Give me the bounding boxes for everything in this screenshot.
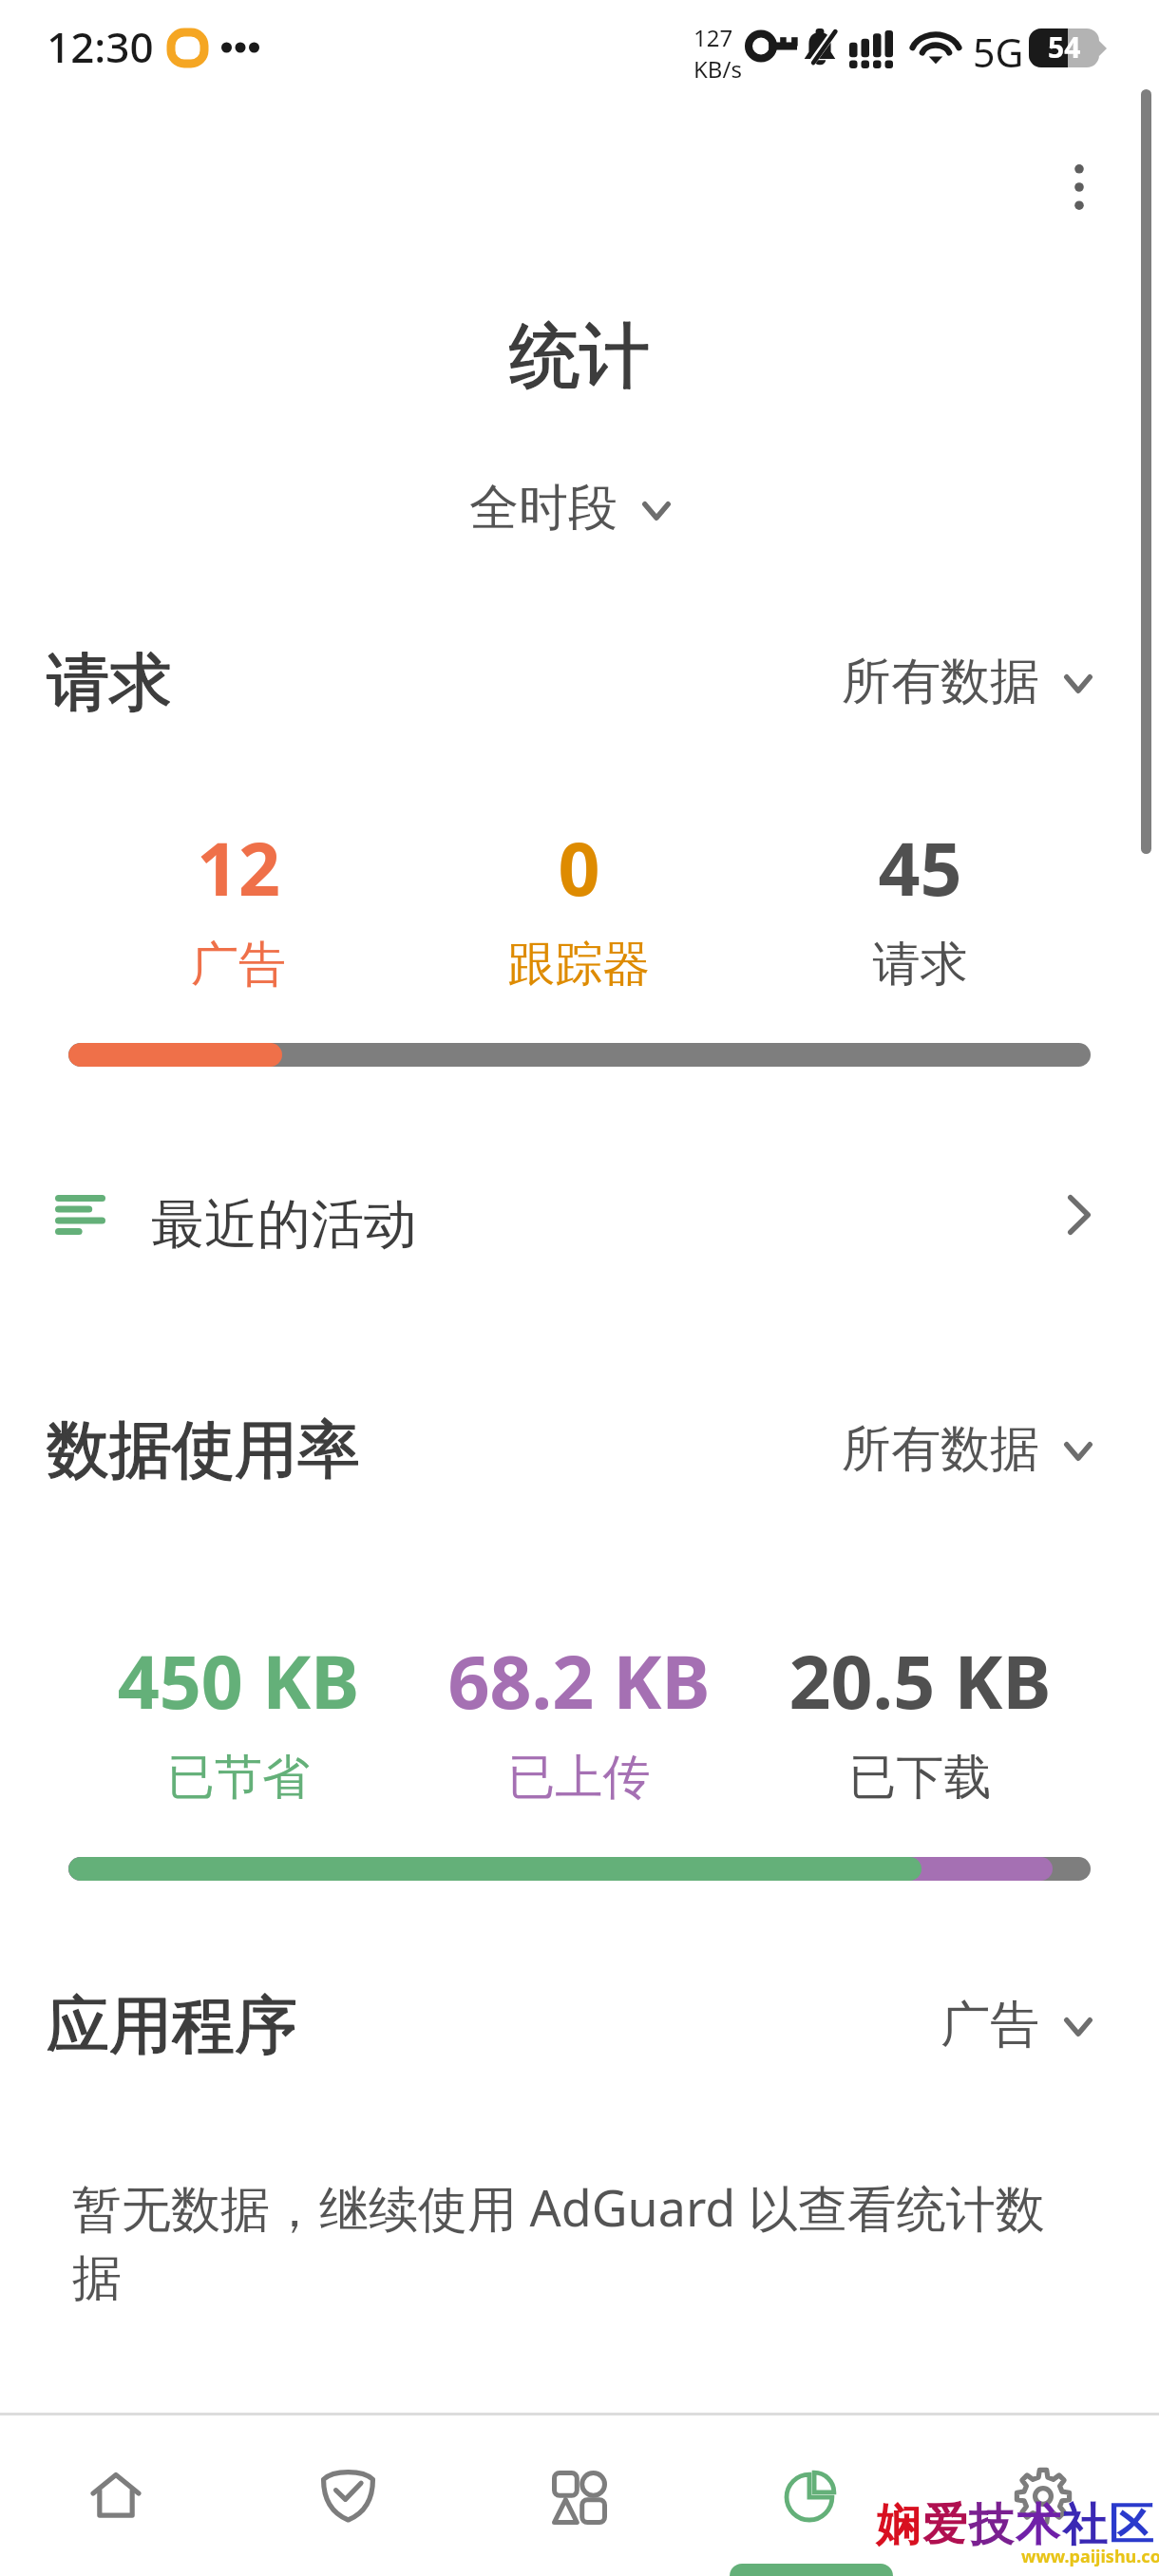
button[interactable]: Settings: [927, 2415, 1159, 2576]
staticText: 数据使用率: [47, 1411, 712, 1489]
staticText: 0: [408, 818, 750, 918]
staticText: 跟踪器: [408, 935, 750, 994]
button[interactable]: Apps: [464, 2415, 695, 2576]
button[interactable]: More options: [1034, 142, 1125, 233]
staticText: 最近的活动: [151, 1191, 417, 1259]
button[interactable]: Protection: [232, 2415, 464, 2576]
button[interactable]: 所有数据: [842, 1418, 1092, 1481]
staticText: 68.2 KB: [408, 1631, 750, 1731]
staticText: 12:30: [47, 18, 154, 75]
staticText: 20.5 KB: [750, 1631, 1091, 1731]
staticText: 已节省: [68, 1748, 408, 1808]
button[interactable]: 广告: [940, 1994, 1092, 2056]
staticText: 所有数据: [842, 651, 1039, 713]
staticText: KB/s: [693, 53, 742, 85]
staticText: 127: [693, 22, 733, 53]
staticText: www.paijishu.com: [1021, 2545, 1159, 2568]
staticText: 54: [1048, 28, 1081, 66]
staticText: 广告: [940, 1994, 1039, 2056]
staticText: 技: [969, 2497, 1016, 2553]
staticText: 应用程序: [47, 1986, 712, 2065]
staticText: 术: [1016, 2497, 1062, 2553]
staticText: 12: [68, 818, 408, 918]
staticText: 广告: [68, 935, 408, 994]
staticText: 请求: [47, 643, 712, 722]
staticText: 区: [1109, 2497, 1155, 2553]
button[interactable]: Home: [0, 2415, 232, 2576]
staticText: 请求: [750, 935, 1091, 994]
staticText: 450 KB: [68, 1631, 408, 1731]
staticText: 统计: [0, 313, 1159, 401]
button[interactable]: 最近的活动: [0, 1149, 1159, 1280]
staticText: 社: [1062, 2497, 1109, 2553]
staticText: 45: [750, 818, 1091, 918]
staticText: 全时段: [469, 477, 617, 540]
staticText: 统计: [0, 313, 1159, 401]
staticText: 数据使用率: [47, 1411, 712, 1489]
staticText: 已上传: [408, 1748, 750, 1808]
staticText: 5G: [973, 26, 1024, 79]
staticText: 应用程序: [47, 1986, 712, 2065]
staticText: 暂无数据，继续使用 AdGuard 以查看统计数据: [72, 2173, 1093, 2309]
button[interactable]: 所有数据: [842, 651, 1092, 713]
staticText: 请求: [47, 643, 712, 722]
button[interactable]: Statistics: [695, 2415, 927, 2576]
staticText: 爱: [922, 2497, 969, 2553]
staticText: 所有数据: [842, 1418, 1039, 1481]
staticText: 已下载: [750, 1748, 1091, 1808]
button[interactable]: 全时段: [0, 477, 1149, 540]
staticText: 娴: [876, 2497, 922, 2553]
